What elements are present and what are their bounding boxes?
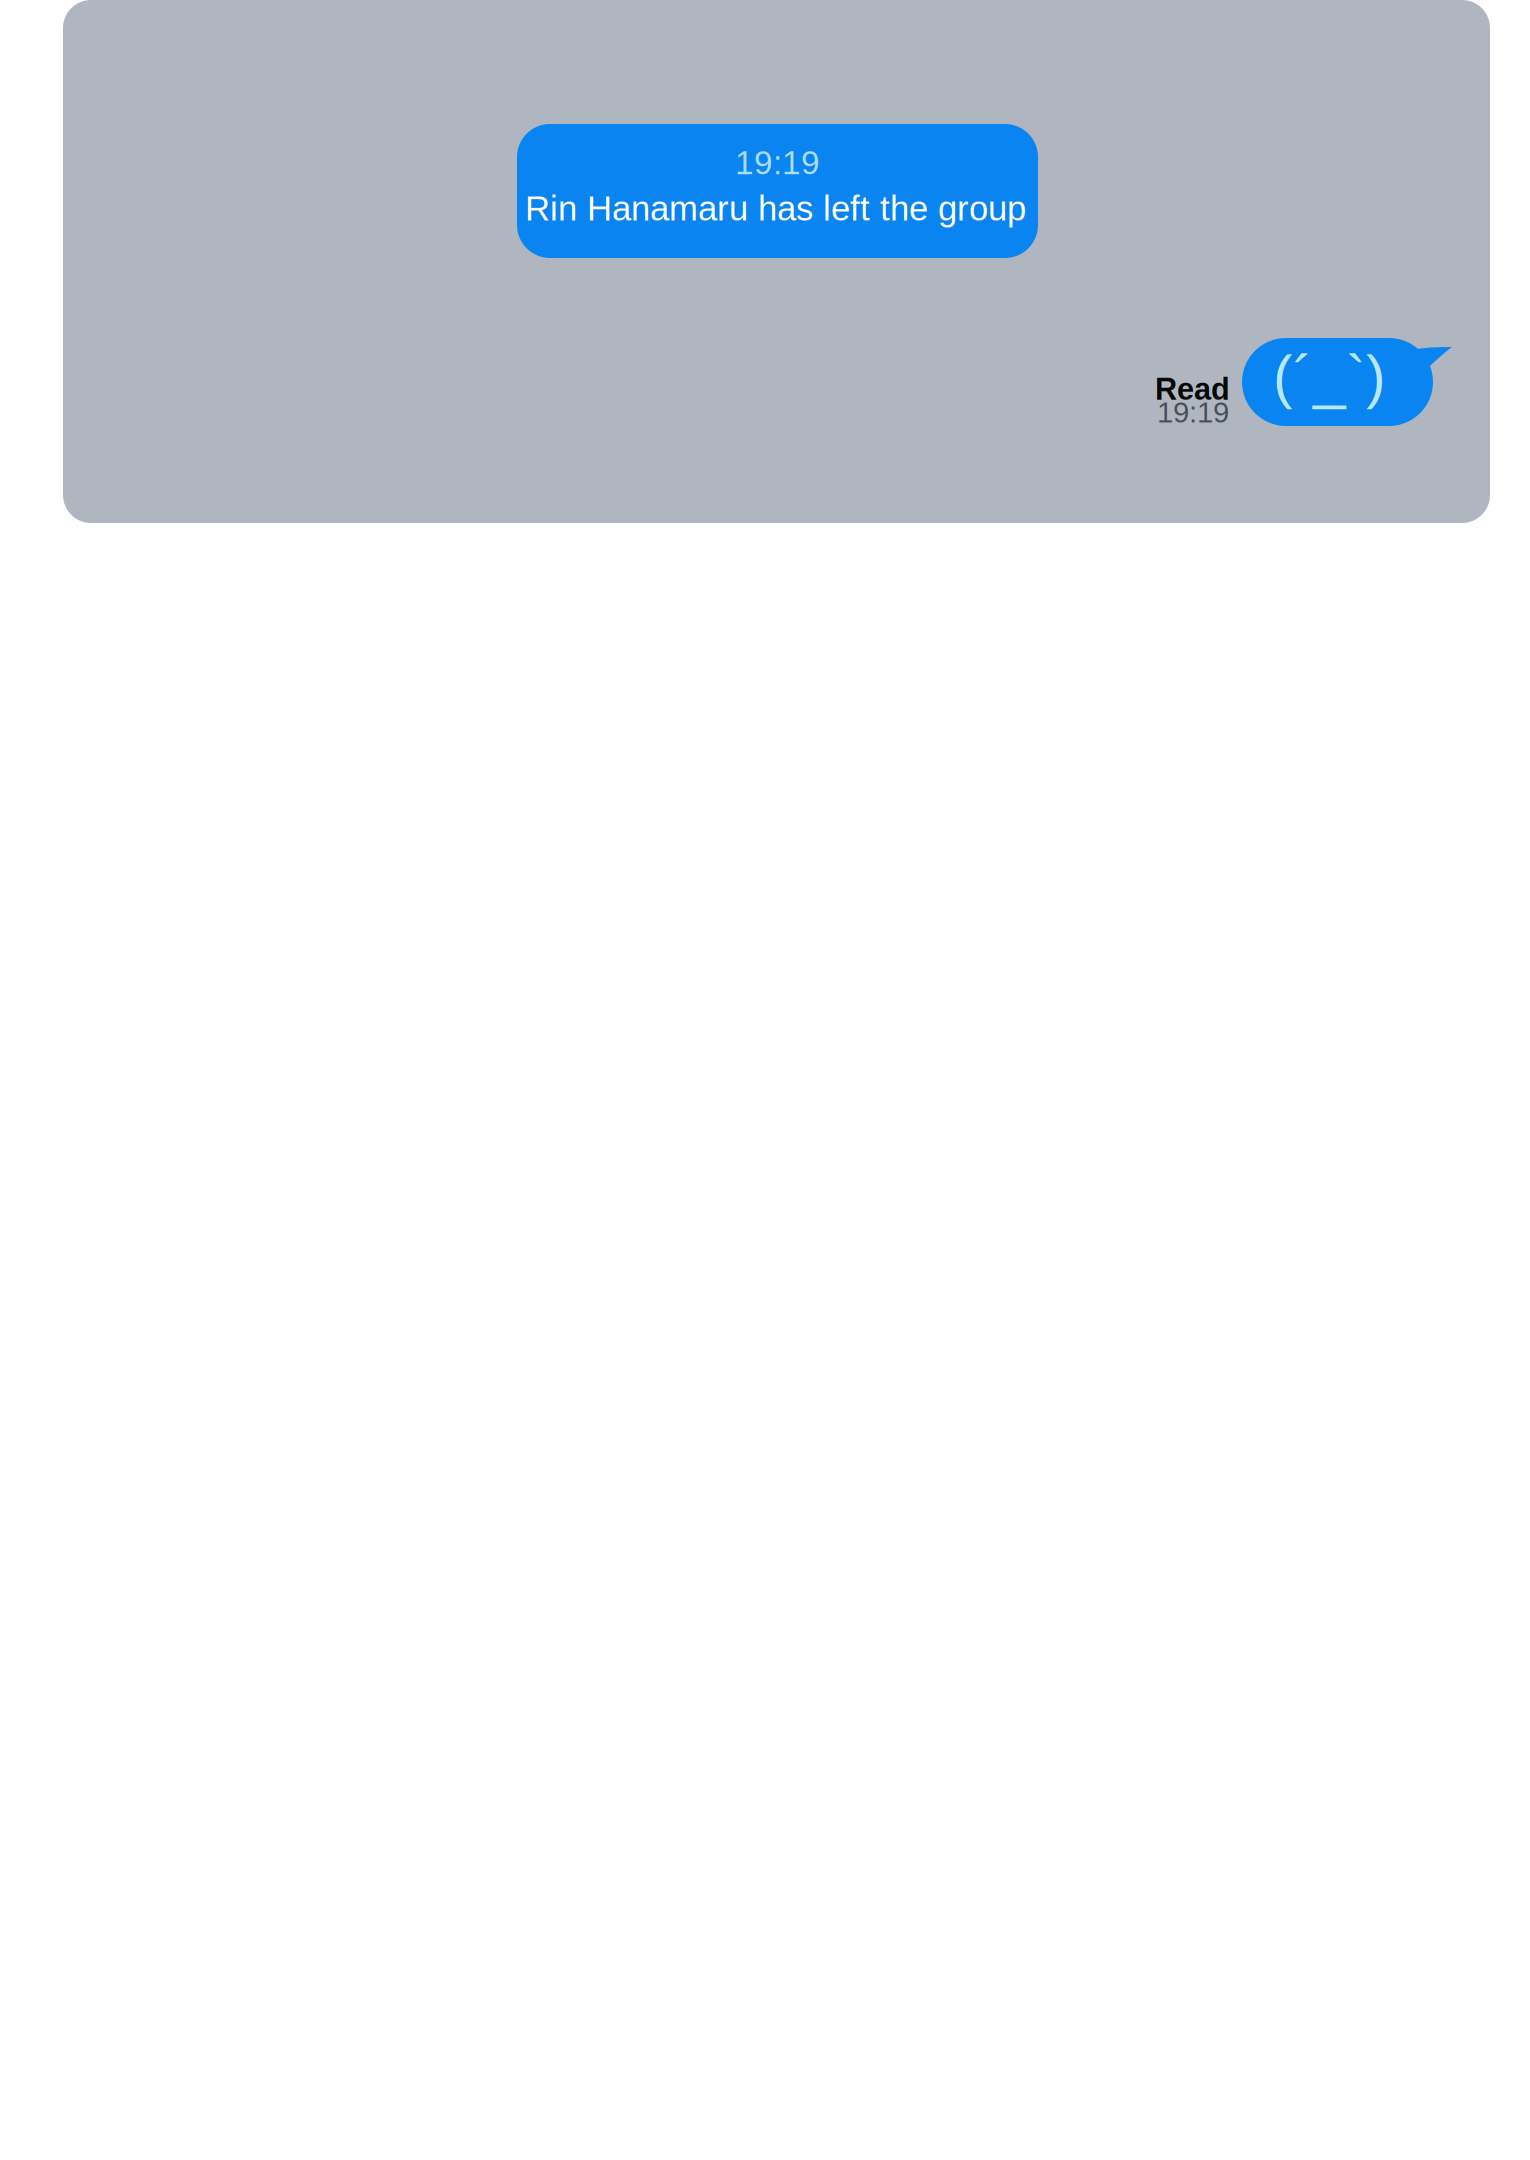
staticText: (´_`)	[1273, 344, 1386, 410]
staticText: Read	[1155, 372, 1230, 406]
button[interactable]: (´_`)	[1242, 338, 1454, 426]
button[interactable]: 19:19	[517, 124, 1038, 258]
button[interactable]: Read	[1070, 372, 1230, 424]
staticText: 19:19	[735, 144, 820, 181]
staticText: Rin Hanamaru has left the group	[525, 189, 1026, 228]
staticText: 19:19	[1157, 396, 1229, 429]
